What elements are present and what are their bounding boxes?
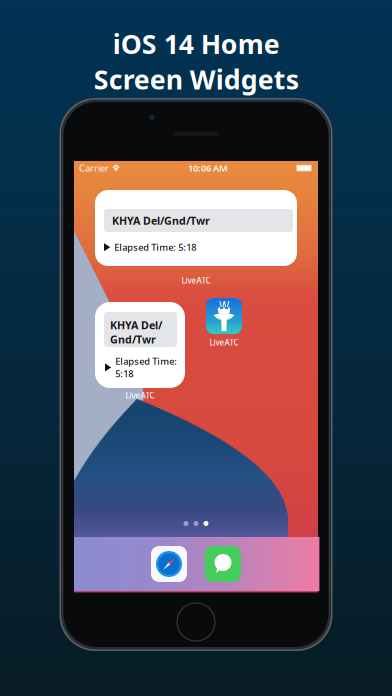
button[interactable]: Messages bbox=[205, 546, 241, 582]
staticText: Carrier bbox=[79, 162, 109, 174]
button[interactable]: Safari bbox=[151, 546, 187, 582]
staticText: LiveATC bbox=[209, 337, 238, 348]
button[interactable]: KHYA Del/Gnd/Twr bbox=[95, 190, 297, 266]
staticText: Elapsed Time: 5:18 bbox=[115, 355, 177, 380]
staticText: LiveATC bbox=[125, 390, 154, 401]
staticText: iOS 14 Home Screen Widgets bbox=[93, 26, 298, 97]
staticText: Elapsed Time: 5:18 bbox=[114, 241, 196, 253]
staticText: 10:06 AM bbox=[188, 162, 228, 174]
button[interactable]: KHYA Del/ Gnd/Twr bbox=[95, 302, 185, 388]
button[interactable]: LiveATC bbox=[206, 298, 242, 334]
staticText: KHYA Del/ Gnd/Twr bbox=[110, 318, 162, 346]
staticText: LiveATC bbox=[181, 275, 210, 286]
staticText: KHYA Del/Gnd/Twr bbox=[112, 213, 210, 228]
